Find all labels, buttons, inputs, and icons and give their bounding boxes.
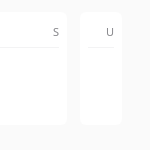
button[interactable]: U xyxy=(80,12,122,125)
staticText: S xyxy=(52,24,59,39)
button[interactable]: S xyxy=(0,12,67,125)
staticText: U xyxy=(105,24,114,39)
